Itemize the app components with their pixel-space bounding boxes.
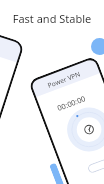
staticText: 00:00:00 <box>56 93 87 113</box>
staticText: Power VPN <box>46 69 82 90</box>
staticText: Fast and Stable <box>0 11 104 26</box>
button[interactable]: Start timer <box>61 101 104 158</box>
